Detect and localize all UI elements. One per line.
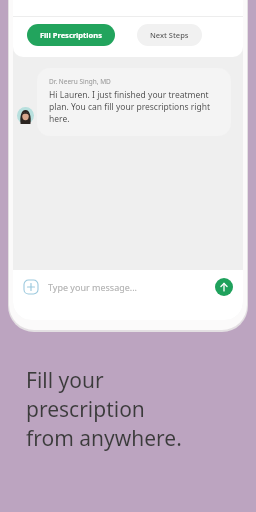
staticText: Fill your bbox=[26, 366, 104, 395]
button[interactable]: Dr. Neeru Singh, MD bbox=[37, 68, 231, 136]
staticText: Hi Lauren. I just finished your treatmen… bbox=[49, 89, 221, 125]
button[interactable]: Next Steps bbox=[137, 24, 202, 46]
button[interactable]: Send bbox=[215, 278, 233, 296]
staticText: Type your message... bbox=[48, 281, 138, 293]
staticText: Dr. Neeru Singh, MD bbox=[49, 77, 111, 86]
staticText: Next Steps bbox=[150, 30, 189, 40]
staticText: prescription bbox=[26, 395, 145, 424]
staticText: Fill Prescriptions bbox=[40, 30, 102, 40]
staticText: from anywhere. bbox=[26, 424, 182, 453]
button[interactable]: Add attachment bbox=[23, 279, 39, 295]
button[interactable]: Fill Prescriptions bbox=[27, 24, 115, 46]
